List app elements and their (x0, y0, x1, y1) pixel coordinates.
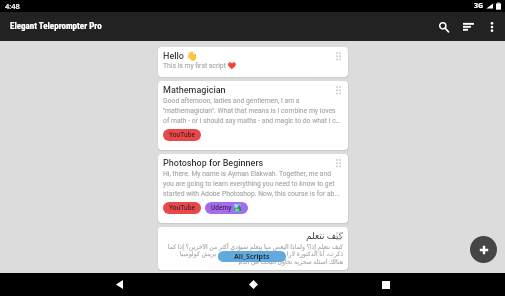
staticText: Hello 👋 (163, 51, 343, 62)
staticText: YouTube (169, 204, 195, 212)
button[interactable]: Back (104, 273, 134, 296)
button[interactable]: YouTube (163, 129, 201, 141)
button[interactable]: Add script (470, 236, 497, 263)
staticText: 3G (474, 1, 484, 11)
staticText: Udemy 🏞️ (211, 204, 242, 212)
staticText: YouTube (169, 131, 195, 139)
button[interactable]: Recent apps (371, 273, 401, 296)
staticText: Photoshop for Beginners (163, 158, 343, 169)
button[interactable]: كيف نتعلم (158, 227, 348, 270)
button[interactable]: Search (431, 14, 456, 39)
staticText: Mathemagician (163, 85, 343, 96)
button[interactable]: All_Scripts (218, 251, 286, 262)
staticText: كيف نتعلم إذا؟ ولماذا البعض منا يتعلم سي… (163, 243, 343, 266)
button[interactable]: Hello 👋 (158, 47, 348, 77)
button[interactable]: Photoshop for Beginners (158, 154, 348, 223)
button[interactable]: Udemy 🏞️ (205, 202, 248, 214)
staticText: Hi, there. My name is Ayman Elakwah. Tog… (163, 170, 343, 197)
staticText: Good afternoon, ladies and gentlemen, I … (163, 97, 343, 124)
staticText: This is my first script ❤️ (163, 62, 237, 70)
button[interactable]: Sort (456, 14, 481, 39)
staticText: كيف نتعلم (163, 231, 343, 242)
button[interactable]: Home (238, 273, 268, 296)
staticText: 4:48 (5, 1, 20, 11)
button[interactable]: YouTube (163, 202, 201, 214)
staticText: Elegant Teleprompter Pro (10, 21, 102, 32)
button[interactable]: Mathemagician (158, 81, 348, 150)
staticText: All_Scripts (234, 252, 270, 262)
button[interactable]: More options (481, 16, 502, 38)
